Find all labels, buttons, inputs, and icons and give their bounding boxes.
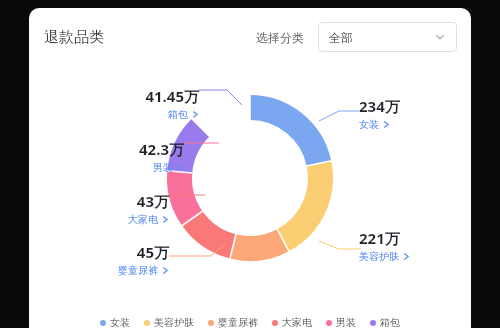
other: 展开分类选项 <box>434 31 446 43</box>
staticText: 男装 <box>153 161 173 174</box>
staticText: 女装 <box>359 118 379 131</box>
button[interactable]: 43万 <box>95 191 169 226</box>
staticText: 婴童尿裤 <box>118 264 158 277</box>
button[interactable]: 美容护肤 <box>138 316 200 328</box>
button[interactable]: 箱包 <box>364 316 406 328</box>
staticText: 45万 <box>136 242 169 262</box>
button[interactable]: 大家电 <box>266 316 318 328</box>
staticText: 退款品类 <box>44 28 104 47</box>
staticText: 43万 <box>136 191 169 211</box>
button[interactable]: 全部 <box>318 22 457 52</box>
staticText: 大家电 <box>282 316 312 328</box>
staticText: 选择分类 <box>256 30 304 45</box>
button[interactable]: 234万 <box>359 96 459 131</box>
button[interactable]: 41.45万 <box>95 86 199 121</box>
staticText: 美容护肤 <box>359 250 399 263</box>
staticText: 箱包 <box>380 316 400 328</box>
button[interactable]: 婴童尿裤 <box>202 316 264 328</box>
staticText: 221万 <box>359 228 400 248</box>
staticText: 婴童尿裤 <box>218 316 258 328</box>
button[interactable]: 退款品类 <box>44 28 104 47</box>
staticText: 男装 <box>336 316 356 328</box>
staticText: 女装 <box>110 316 130 328</box>
staticText: 美容护肤 <box>154 316 194 328</box>
staticText: 41.45万 <box>145 86 199 106</box>
staticText: 234万 <box>359 96 400 116</box>
staticText: 42.3万 <box>139 139 184 159</box>
button[interactable]: 221万 <box>359 228 469 263</box>
button[interactable]: 45万 <box>75 242 169 277</box>
button[interactable]: 42.3万 <box>95 139 184 174</box>
staticText: 箱包 <box>168 108 188 121</box>
button[interactable]: 女装 <box>94 316 136 328</box>
staticText: 全部 <box>329 30 353 45</box>
button[interactable]: 男装 <box>320 316 362 328</box>
staticText: 大家电 <box>128 213 158 226</box>
